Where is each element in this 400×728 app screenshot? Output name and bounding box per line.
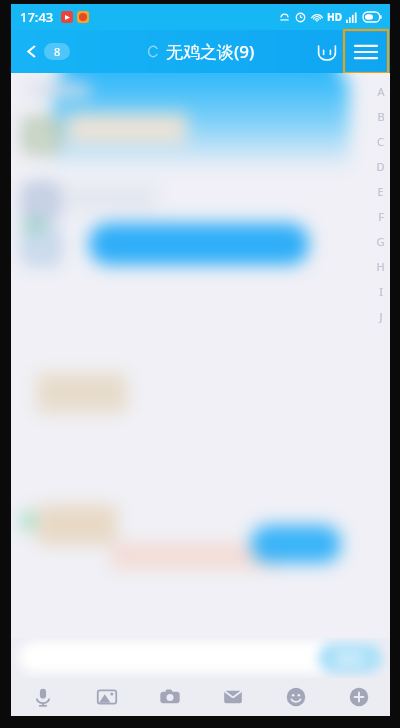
staticText: 17:43 — [20, 8, 54, 26]
button[interactable]: Photos — [75, 678, 138, 716]
button[interactable]: Gift — [201, 678, 264, 716]
staticText: 无鸡之谈(9) — [166, 40, 255, 63]
staticText: HD — [327, 10, 342, 24]
staticText: H — [376, 259, 385, 274]
staticText: G — [376, 234, 385, 249]
staticText: 发送 — [337, 650, 363, 666]
button[interactable]: Emoji — [264, 678, 327, 716]
button[interactable]: Camera — [138, 678, 201, 716]
button[interactable]: Back — [17, 39, 78, 64]
staticText: E — [377, 184, 384, 199]
staticText: B — [377, 109, 385, 124]
button[interactable]: More — [327, 678, 390, 716]
button[interactable] — [318, 643, 382, 673]
staticText: F — [378, 209, 384, 224]
staticText: C — [377, 134, 384, 149]
button[interactable]: Voice — [11, 678, 75, 716]
staticText: 8 — [54, 44, 61, 59]
button[interactable]: Menu — [344, 30, 388, 73]
button[interactable]: Group members — [312, 37, 342, 67]
staticText: D — [376, 159, 385, 174]
staticText: J — [379, 309, 383, 324]
staticText: A — [377, 84, 385, 99]
staticText: I — [379, 284, 383, 299]
